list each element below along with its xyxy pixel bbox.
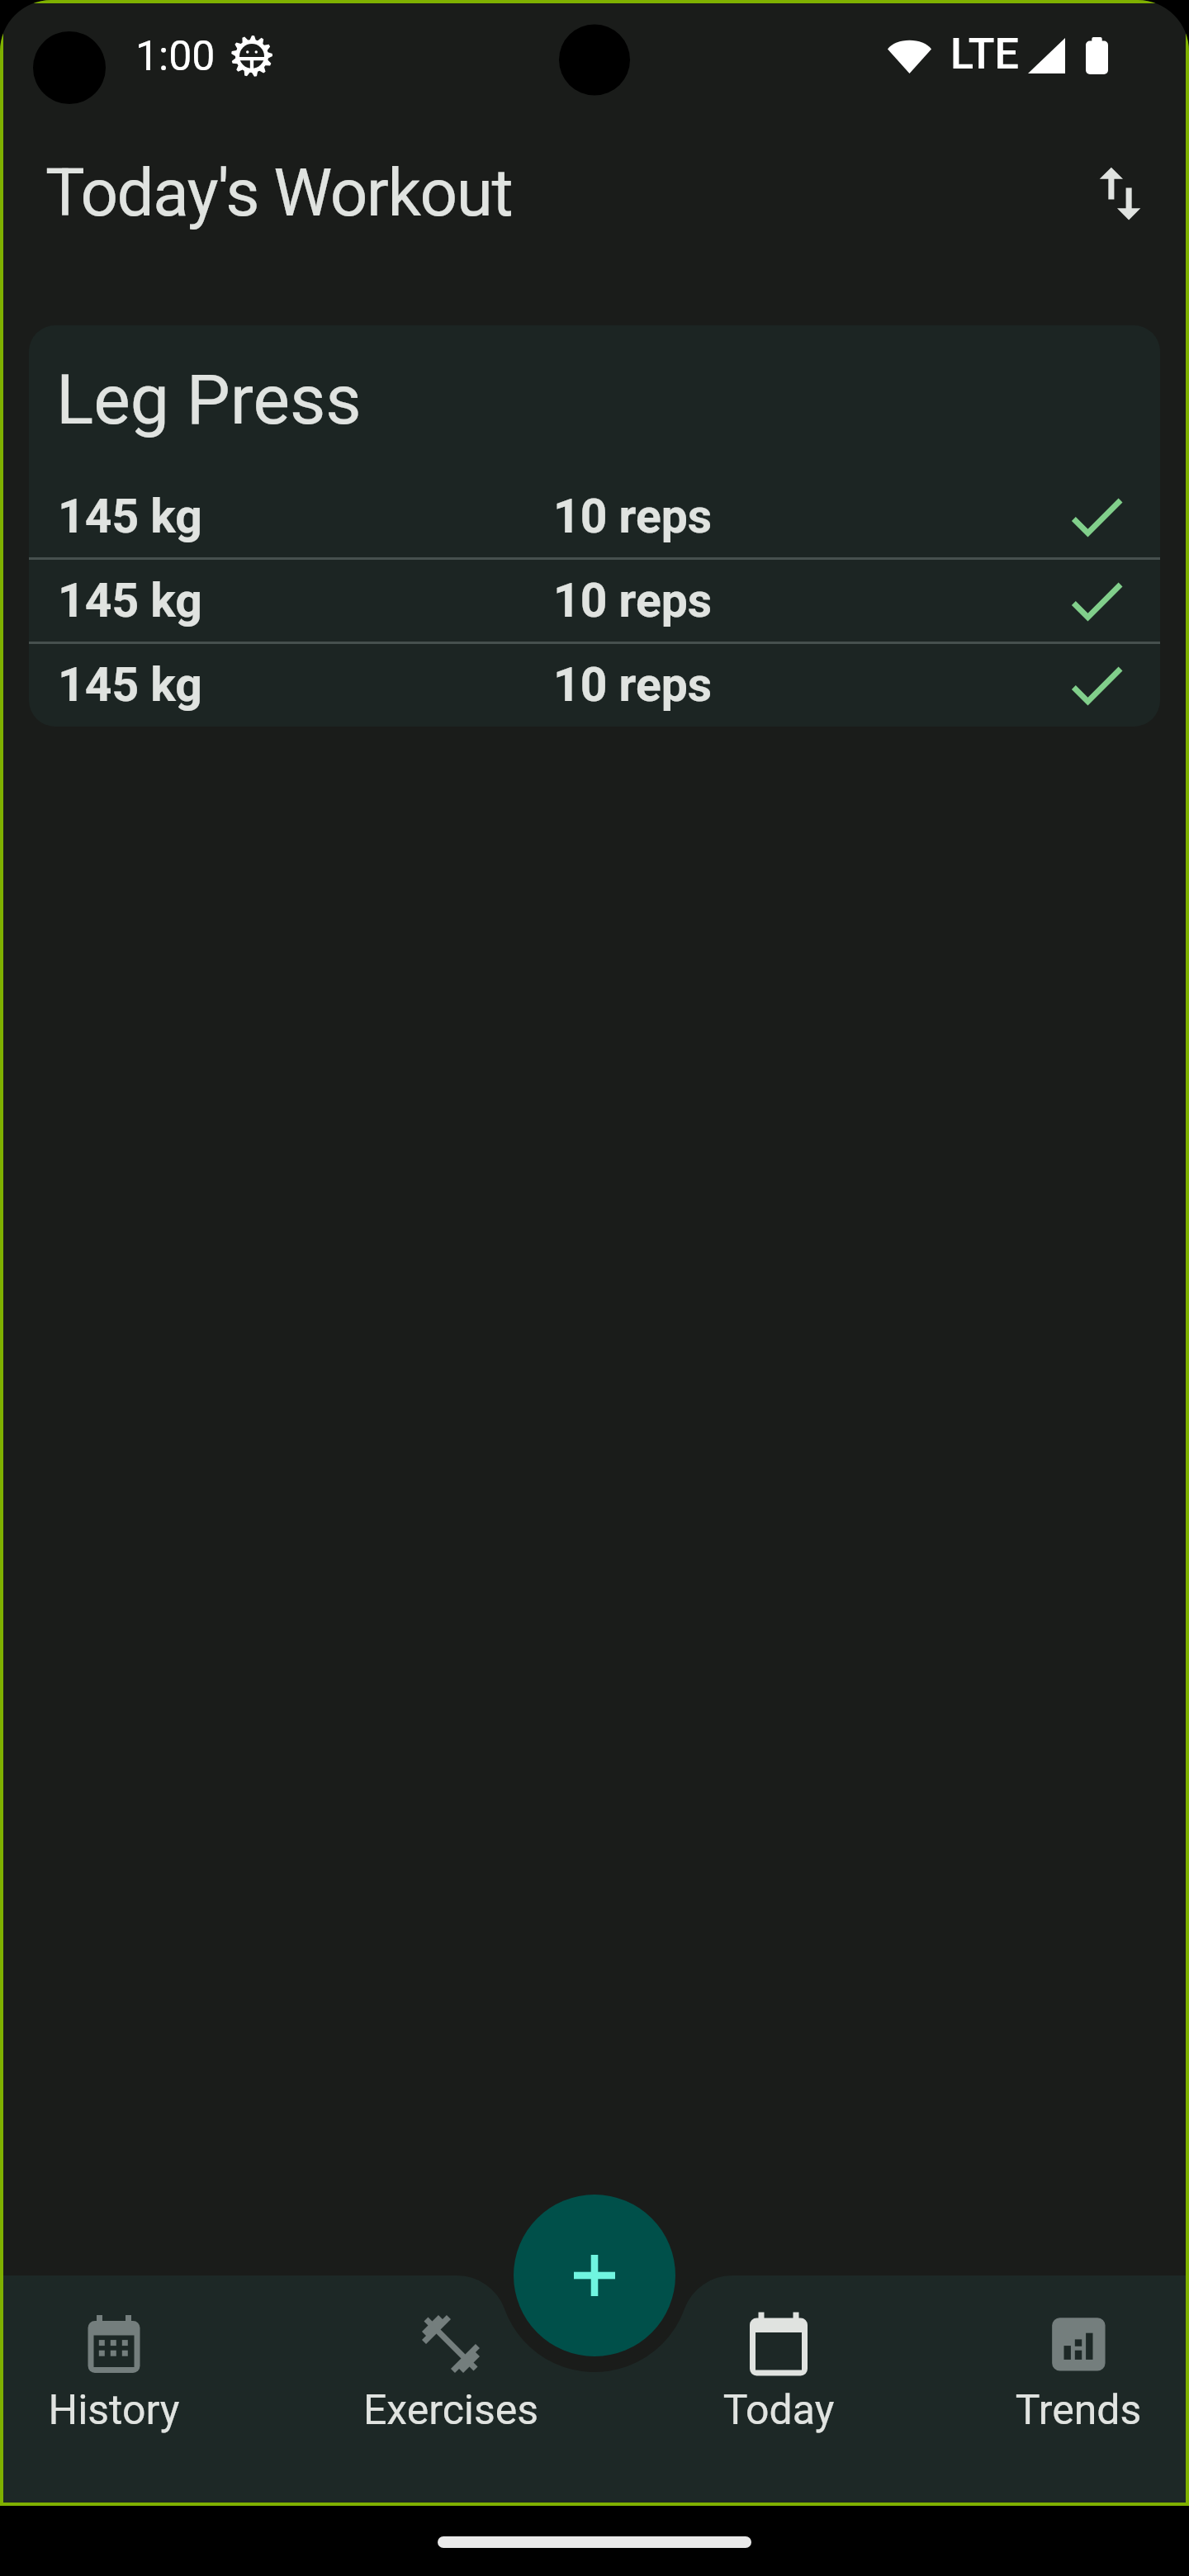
- staticText: Leg Press: [56, 359, 362, 440]
- staticText: Today: [671, 2386, 886, 2435]
- staticText: Trends: [971, 2386, 1186, 2435]
- staticText: 10 reps: [553, 573, 1062, 628]
- staticText: Exercises: [343, 2386, 558, 2435]
- button[interactable]: Exercises: [343, 2295, 558, 2452]
- staticText: History: [7, 2386, 221, 2435]
- button[interactable]: Sort sets: [1050, 124, 1189, 263]
- button[interactable]: 145 kg: [29, 560, 1160, 642]
- button[interactable]: 145 kg: [29, 476, 1160, 557]
- staticText: Today's Workout: [45, 154, 513, 232]
- staticText: 145 kg: [58, 573, 553, 628]
- staticText: 10 reps: [553, 489, 1062, 544]
- staticText: 1:00: [135, 32, 216, 81]
- button[interactable]: Trends: [971, 2295, 1186, 2452]
- staticText: LTE: [950, 29, 1019, 79]
- staticText: 10 reps: [553, 657, 1062, 713]
- staticText: 145 kg: [58, 657, 553, 713]
- button[interactable]: Add exercise: [514, 2195, 675, 2356]
- button[interactable]: Leg Press: [29, 325, 1160, 727]
- staticText: 145 kg: [58, 489, 553, 544]
- button[interactable]: History: [7, 2295, 221, 2452]
- button[interactable]: Today: [671, 2295, 886, 2452]
- button[interactable]: 145 kg: [29, 644, 1160, 726]
